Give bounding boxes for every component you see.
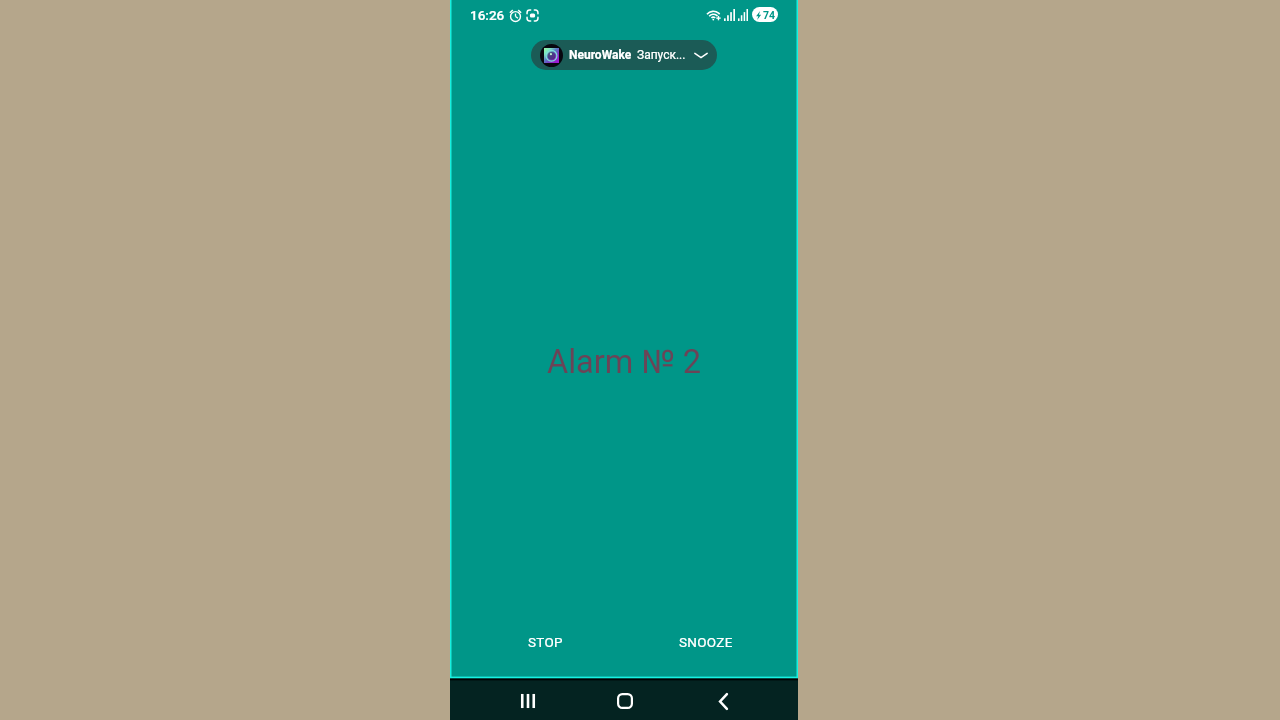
staticText: SNOOZE	[679, 634, 733, 650]
button[interactable]: Recents	[506, 680, 550, 720]
button[interactable]: Back	[701, 680, 745, 720]
staticText: STOP	[528, 634, 563, 650]
staticText: Запуск...	[637, 48, 686, 62]
other: Expand notification	[694, 48, 708, 62]
staticText: 74	[763, 9, 776, 21]
staticText: NeuroWake	[569, 48, 632, 62]
staticText: Alarm № 2	[547, 343, 702, 381]
button[interactable]: Home	[603, 680, 647, 720]
button[interactable]: STOP	[520, 628, 571, 656]
staticText: 16:26	[470, 7, 505, 23]
button[interactable]: SNOOZE	[671, 628, 741, 656]
button[interactable]: NeuroWake	[531, 40, 717, 70]
